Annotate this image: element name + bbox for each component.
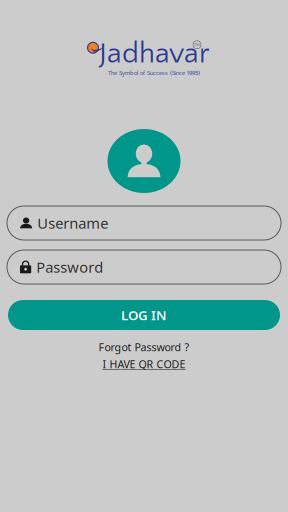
staticText: LOG IN <box>121 306 167 324</box>
button[interactable]: I HAVE QR CODE <box>102 358 185 370</box>
staticText: I HAVE QR CODE <box>102 357 185 371</box>
staticText: Username <box>37 213 108 233</box>
button[interactable]: Password <box>7 250 281 284</box>
staticText: Forgot Password ? <box>98 340 189 354</box>
button[interactable]: Username <box>7 206 281 240</box>
staticText: Jadhavar <box>99 38 209 70</box>
staticText: The Symbol of Success (Since 1995) <box>108 70 200 76</box>
button[interactable]: Forgot Password ? <box>98 341 189 353</box>
staticText: TM <box>194 42 200 47</box>
staticText: Password <box>36 257 103 277</box>
button[interactable]: LOG IN <box>8 300 280 330</box>
